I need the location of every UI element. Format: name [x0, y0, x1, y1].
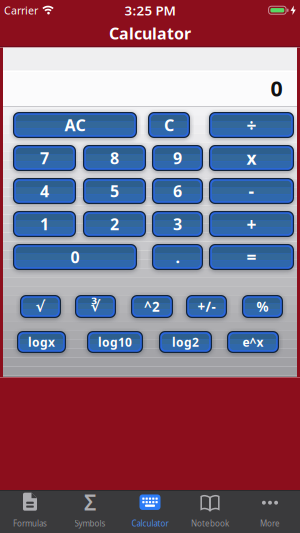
staticText: Σ	[84, 488, 96, 516]
staticText: 3:25 PM	[124, 1, 175, 19]
button[interactable]: x	[209, 145, 294, 171]
staticText: 3	[173, 213, 182, 235]
staticText: 6	[173, 180, 182, 202]
button[interactable]: Notebook	[180, 491, 240, 533]
staticText: Carrier	[4, 3, 38, 17]
button[interactable]: -	[209, 178, 294, 204]
button[interactable]: 6	[152, 178, 203, 204]
staticText: +/-	[197, 298, 215, 315]
staticText: log2	[172, 334, 199, 350]
staticText: %	[256, 298, 268, 315]
button[interactable]: +/-	[186, 295, 227, 318]
staticText: 0	[70, 246, 79, 268]
button[interactable]: Σ	[60, 491, 120, 533]
button[interactable]: 1	[13, 211, 76, 237]
staticText: Symbols	[74, 518, 105, 529]
button[interactable]: 0	[13, 244, 137, 270]
staticText: AC	[64, 114, 85, 136]
staticText: 8	[110, 147, 119, 169]
button[interactable]: C	[148, 112, 190, 138]
button[interactable]: log2	[159, 331, 212, 353]
staticText: C	[164, 114, 174, 136]
button[interactable]: 3	[152, 211, 203, 237]
button[interactable]: More	[240, 491, 300, 533]
staticText: 4	[40, 180, 49, 202]
button[interactable]: ^2	[131, 295, 173, 318]
button[interactable]: AC	[13, 112, 137, 138]
staticText: 5	[110, 180, 119, 202]
staticText: Calculator	[109, 23, 191, 44]
button[interactable]: Calculator	[120, 491, 180, 533]
staticText: Calculator	[131, 518, 168, 529]
button[interactable]: 5	[83, 178, 146, 204]
button[interactable]: 8	[83, 145, 146, 171]
staticText: 7	[40, 147, 49, 169]
staticText: Formulas	[13, 518, 47, 529]
staticText: logx	[28, 334, 55, 350]
staticText: x	[246, 146, 256, 169]
button[interactable]: 4	[13, 178, 76, 204]
staticText: Notebook	[191, 518, 229, 529]
button[interactable]: +	[209, 211, 294, 237]
staticText: ∛	[90, 298, 100, 315]
staticText: =	[246, 245, 256, 268]
button[interactable]: logx	[17, 331, 66, 353]
button[interactable]: 7	[13, 145, 76, 171]
staticText: More	[260, 518, 280, 529]
staticText: √	[35, 298, 45, 315]
staticText: ^2	[144, 298, 160, 315]
staticText: log10	[98, 334, 132, 350]
button[interactable]: √	[20, 295, 61, 318]
button[interactable]: %	[242, 295, 283, 318]
button[interactable]: 9	[152, 145, 203, 171]
staticText: ÷	[246, 113, 256, 136]
staticText: 1	[40, 213, 49, 235]
button[interactable]: e^x	[227, 331, 279, 353]
button[interactable]: Formulas	[0, 491, 60, 533]
staticText: 0	[270, 74, 282, 102]
staticText: 9	[173, 147, 182, 169]
button[interactable]: =	[209, 244, 294, 270]
staticText: -	[248, 179, 254, 202]
staticText: .	[175, 246, 179, 268]
button[interactable]: ÷	[209, 112, 294, 138]
staticText: 2	[110, 213, 119, 235]
button[interactable]: log10	[87, 331, 143, 353]
staticText: e^x	[242, 334, 263, 350]
button[interactable]: .	[152, 244, 203, 270]
button[interactable]: ∛	[75, 295, 116, 318]
staticText: +	[246, 212, 256, 235]
button[interactable]: 2	[83, 211, 146, 237]
